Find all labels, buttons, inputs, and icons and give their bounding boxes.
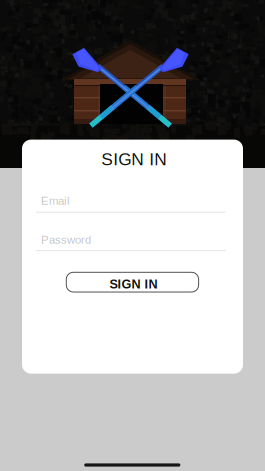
staticText: Password bbox=[41, 233, 91, 246]
staticText: SIGN IN bbox=[101, 150, 167, 169]
button[interactable]: SIGN IN bbox=[66, 272, 199, 292]
staticText: SIGN IN bbox=[109, 277, 157, 291]
staticText: Email bbox=[41, 194, 70, 207]
